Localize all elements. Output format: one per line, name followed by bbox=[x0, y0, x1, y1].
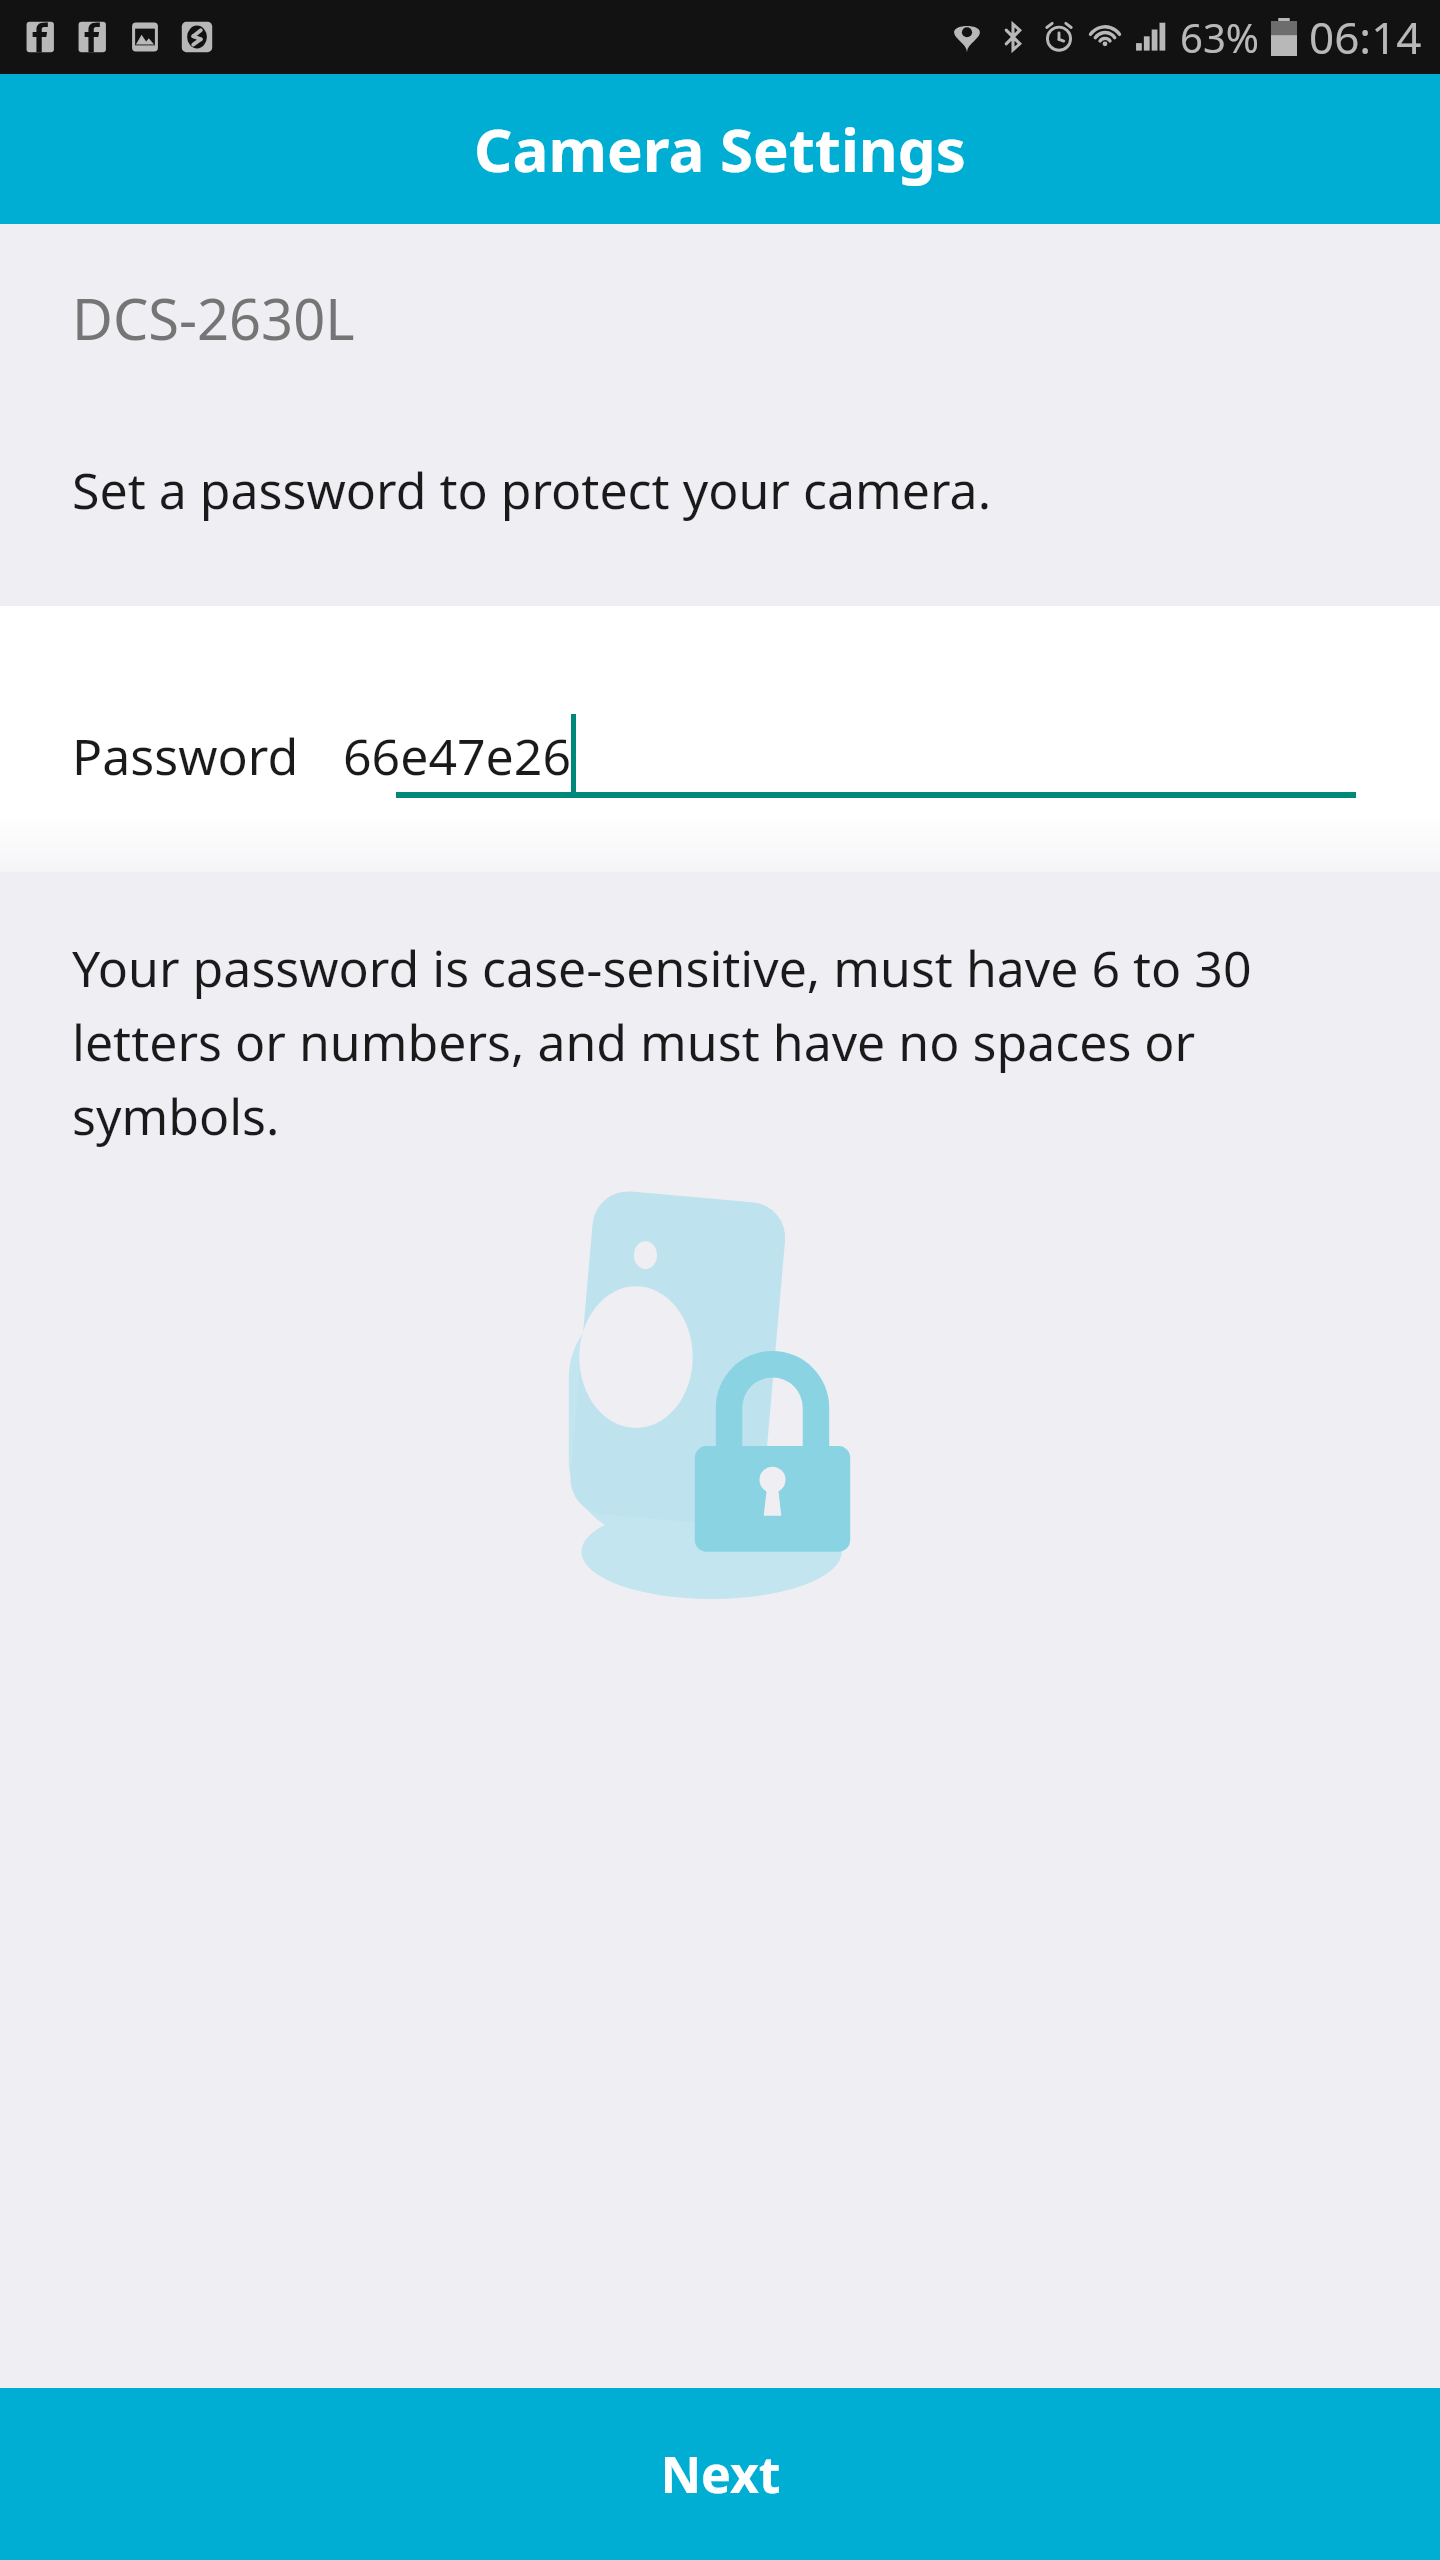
staticText: Set a password to protect your camera. bbox=[72, 456, 992, 524]
button[interactable]: Next bbox=[0, 2388, 1440, 2560]
button[interactable]: Password bbox=[0, 606, 1440, 872]
staticText: 63% bbox=[1180, 10, 1259, 64]
staticText: Next bbox=[660, 2440, 781, 2508]
staticText: DCS-2630L bbox=[72, 280, 355, 356]
staticText: Your password is case-sensitive, must ha… bbox=[72, 934, 1380, 1150]
staticText: Password bbox=[72, 722, 299, 790]
staticText: 06:14 bbox=[1309, 7, 1422, 67]
staticText: 66e47e26 bbox=[343, 722, 571, 790]
staticText: Camera Settings bbox=[474, 108, 966, 190]
